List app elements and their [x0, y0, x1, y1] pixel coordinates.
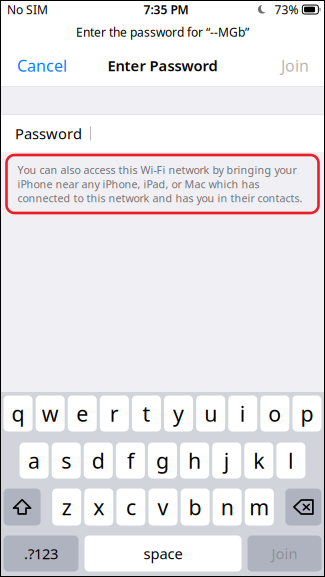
button[interactable]: g	[148, 442, 177, 478]
button[interactable]: e	[68, 395, 97, 431]
staticText: j	[224, 446, 230, 475]
button[interactable]: v	[148, 488, 177, 525]
button[interactable]: Join	[247, 535, 321, 571]
button[interactable]: x	[84, 488, 113, 525]
staticText: c	[126, 493, 136, 521]
staticText: 73%	[274, 1, 298, 17]
button[interactable]: o	[260, 395, 289, 431]
button[interactable]: s	[52, 442, 81, 478]
button[interactable]: b	[181, 488, 210, 525]
button[interactable]: h	[180, 442, 209, 478]
staticText: n	[221, 493, 234, 521]
button[interactable]: a	[20, 442, 49, 478]
button[interactable]: z	[52, 488, 81, 525]
button[interactable]: j	[212, 442, 241, 478]
staticText: Enter Password	[107, 56, 217, 75]
button[interactable]: f	[116, 442, 145, 478]
staticText: r	[110, 399, 119, 428]
staticText: u	[204, 399, 217, 428]
staticText: f	[127, 446, 134, 475]
staticText: b	[189, 493, 202, 521]
button[interactable]: n	[213, 488, 242, 525]
staticText: .?123	[24, 544, 58, 563]
button[interactable]: q	[4, 395, 33, 431]
staticText: t	[142, 399, 150, 428]
staticText: No SIM	[7, 1, 48, 17]
button[interactable]: d	[84, 442, 113, 478]
staticText: p	[300, 399, 313, 428]
staticText: v	[157, 493, 168, 521]
staticText: e	[76, 399, 88, 428]
button[interactable]: r	[100, 395, 129, 431]
button[interactable]: Delete	[285, 488, 321, 525]
staticText: Cancel	[17, 55, 67, 76]
button[interactable]: i	[228, 395, 257, 431]
button[interactable]: c	[116, 488, 145, 525]
button[interactable]: w	[36, 395, 65, 431]
button[interactable]: k	[244, 442, 273, 478]
staticText: z	[62, 493, 72, 521]
staticText: g	[156, 446, 169, 475]
staticText: a	[28, 446, 40, 475]
staticText: 7:35 PM	[143, 1, 188, 17]
staticText: x	[93, 493, 104, 521]
staticText: o	[268, 399, 281, 428]
staticText: k	[253, 446, 264, 475]
staticText: Enter the password for “--MGb”	[76, 24, 249, 40]
button[interactable]: Shift	[4, 488, 41, 525]
button[interactable]: m	[245, 488, 274, 525]
staticText: h	[188, 446, 201, 475]
staticText: Join	[281, 55, 309, 76]
staticText: l	[288, 446, 294, 475]
button[interactable]: space	[84, 535, 241, 571]
button[interactable]: y	[164, 395, 193, 431]
staticText: Join	[271, 544, 297, 563]
button[interactable]: p	[292, 395, 321, 431]
staticText: m	[249, 493, 269, 521]
button[interactable]: u	[196, 395, 225, 431]
staticText: space	[143, 544, 182, 563]
button[interactable]: Cancel	[8, 45, 76, 86]
button[interactable]: Join	[273, 45, 317, 86]
staticText: q	[12, 399, 25, 428]
button[interactable]: .?123	[3, 535, 78, 571]
button[interactable]: l	[276, 442, 305, 478]
staticText: d	[92, 446, 105, 475]
staticText: i	[240, 399, 246, 428]
staticText: y	[173, 399, 184, 428]
button[interactable]: t	[132, 395, 161, 431]
staticText: You can also access this Wi-Fi network b…	[17, 163, 302, 205]
staticText: Password	[15, 124, 82, 143]
staticText: s	[61, 446, 71, 475]
staticText: w	[42, 399, 59, 428]
